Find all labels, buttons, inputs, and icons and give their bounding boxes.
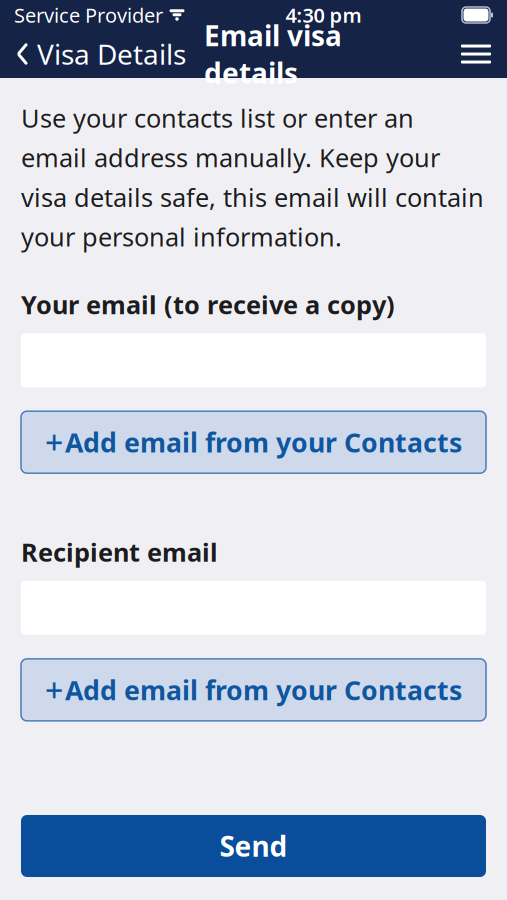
button[interactable]: Visa Details (0, 27, 186, 81)
staticText: 4:30 pm (285, 2, 361, 28)
staticText: Service Provider (14, 2, 163, 28)
staticText: Use your contacts list or enter an email… (21, 101, 484, 254)
button[interactable]: + (21, 411, 486, 473)
button[interactable]: + (21, 659, 486, 721)
staticText: Your email (to receive a copy) (21, 288, 395, 321)
staticText: Visa Details (37, 35, 186, 73)
staticText: Add email from your Contacts (65, 672, 462, 707)
button[interactable]: Send (21, 815, 486, 877)
staticText: Recipient email (21, 535, 218, 569)
staticText: Send (219, 827, 287, 865)
staticText: + (45, 421, 63, 463)
staticText: + (45, 669, 63, 711)
staticText: Email visa details (204, 17, 342, 91)
button[interactable]: Menu (445, 32, 507, 75)
staticText: Add email from your Contacts (65, 424, 462, 460)
